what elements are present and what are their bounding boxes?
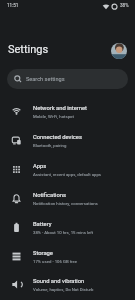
staticText: Notification history, conversations [33,201,98,206]
staticText: Volume, haptics, Do Not Disturb [33,287,94,292]
button[interactable]: Apps [0,155,135,184]
staticText: Mobile, Wi-Fi, hotspot [33,114,74,119]
staticText: 38% [120,3,129,8]
staticText: Battery [33,221,52,228]
staticText: Storage [33,250,53,257]
button[interactable]: Storage [0,242,135,271]
staticText: Assistant, recent apps, default apps [33,172,102,177]
staticText: 11:51 [7,3,19,8]
staticText: 38% - About 10 hrs, 15 mins left [33,230,94,235]
staticText: Search settings [26,76,65,83]
staticText: Apps [33,163,47,170]
staticText: 17% used - 106 GB free [33,259,78,264]
button[interactable]: Network and internet [0,97,135,126]
button[interactable] [111,43,127,59]
staticText: Bluetooth, pairing [33,143,67,148]
button[interactable]: Search settings [7,69,128,89]
staticText: Network and internet [33,105,87,112]
staticText: Settings [8,43,49,56]
staticText: Sound and vibration [33,278,85,285]
staticText: Connected devices [33,134,82,141]
button[interactable]: Notifications [0,184,135,213]
button[interactable]: Connected devices [0,126,135,155]
staticText: Notifications [33,192,66,199]
button[interactable]: Sound and vibration [0,270,135,299]
button[interactable]: Battery [0,213,135,242]
